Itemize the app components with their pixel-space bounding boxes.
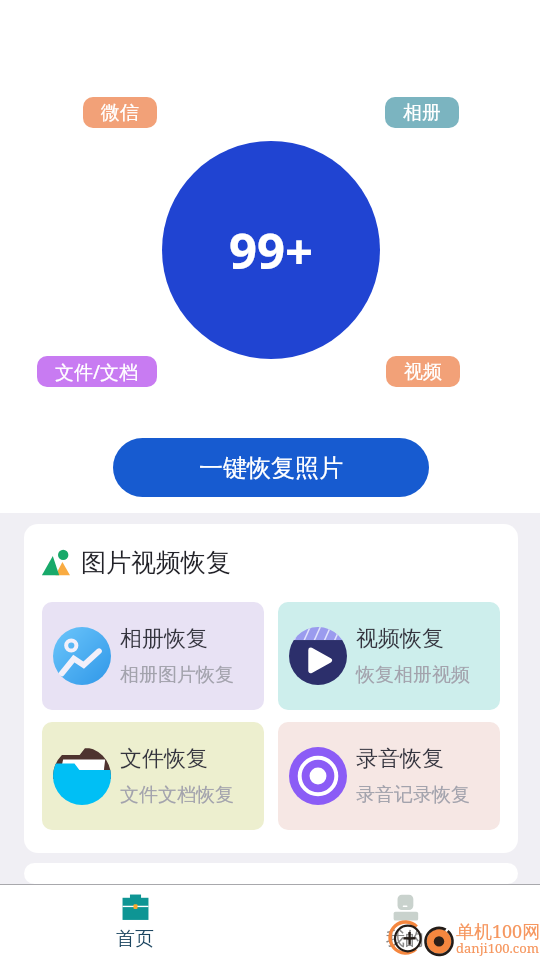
button[interactable]: 一键恢复照片 bbox=[113, 438, 429, 497]
button[interactable]: 录音恢复 bbox=[278, 722, 500, 830]
staticText: 微信 bbox=[101, 101, 139, 125]
staticText: 首页 bbox=[116, 927, 154, 951]
staticText: 图片视频恢复 bbox=[81, 547, 231, 578]
button[interactable]: 首页 bbox=[94, 886, 176, 959]
staticText: 相册 bbox=[403, 101, 441, 125]
staticText: 录音记录恢复 bbox=[356, 783, 470, 807]
button[interactable]: 99 plus recoverable items bbox=[162, 141, 380, 359]
staticText: 我的 bbox=[386, 927, 424, 951]
staticText: 单机100网 bbox=[456, 919, 540, 944]
button[interactable]: 文件/文档 bbox=[37, 356, 157, 387]
button[interactable]: 相册 bbox=[385, 97, 459, 128]
button[interactable]: 我的 bbox=[364, 886, 446, 959]
staticText: danji100.com bbox=[456, 939, 539, 957]
staticText: 相册图片恢复 bbox=[120, 663, 234, 687]
staticText: 文件/文档 bbox=[55, 359, 139, 385]
staticText: 相册恢复 bbox=[120, 625, 208, 653]
staticText: 99+ bbox=[229, 217, 314, 284]
staticText: 一键恢复照片 bbox=[199, 453, 343, 483]
staticText: 录音恢复 bbox=[356, 745, 444, 773]
button[interactable]: 相册恢复 bbox=[42, 602, 264, 710]
staticText: 视频 bbox=[404, 360, 442, 384]
staticText: 文件文档恢复 bbox=[120, 783, 234, 807]
button[interactable]: 视频 bbox=[386, 356, 460, 387]
staticText: 文件恢复 bbox=[120, 745, 208, 773]
staticText: 视频恢复 bbox=[356, 625, 444, 653]
button[interactable]: 文件恢复 bbox=[42, 722, 264, 830]
staticText: 恢复相册视频 bbox=[356, 663, 470, 687]
button[interactable]: 视频恢复 bbox=[278, 602, 500, 710]
button[interactable]: 微信 bbox=[83, 97, 157, 128]
